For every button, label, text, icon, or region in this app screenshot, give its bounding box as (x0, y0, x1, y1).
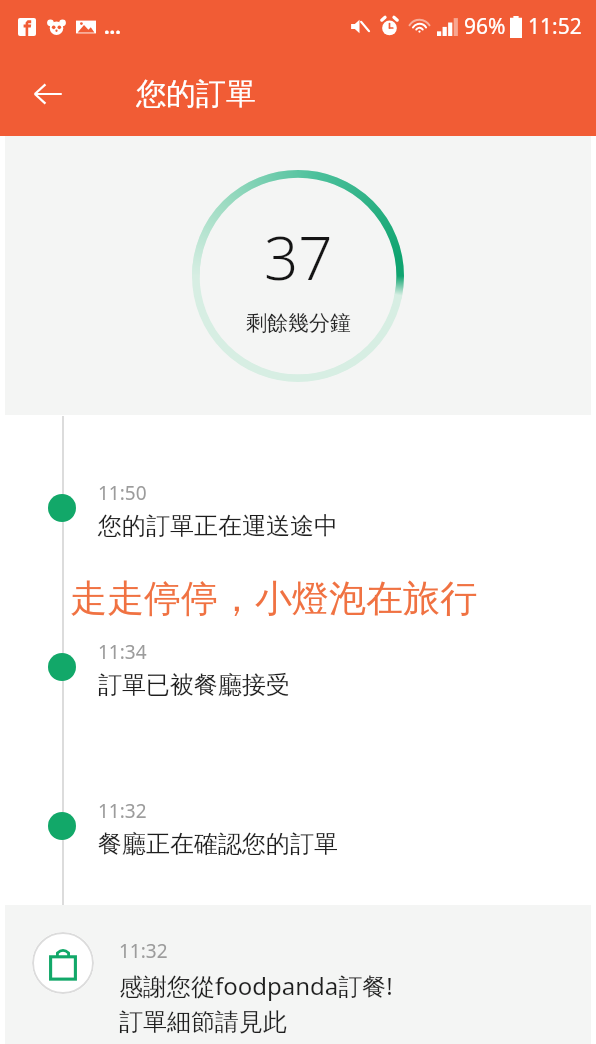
button[interactable]: 11:50 (0, 480, 596, 541)
staticText: 11:50 (98, 480, 147, 506)
button[interactable]: Back (20, 66, 76, 122)
staticText: 訂單已被餐廳接受 (98, 670, 290, 700)
staticText: 剩餘幾分鐘 (246, 310, 351, 336)
staticText: 走走停停，小燈泡在旅行 (70, 575, 477, 622)
staticText: 11:52 (528, 12, 582, 41)
staticText: 11:34 (98, 639, 147, 665)
button[interactable]: 11:34 (0, 639, 596, 700)
staticText: 您的訂單 (136, 75, 256, 113)
staticText: 您的訂單正在運送途中 (98, 511, 338, 541)
staticText: 37 (264, 216, 333, 298)
staticText: 感謝您從foodpanda訂餐! (119, 969, 393, 1002)
staticText: 11:32 (119, 938, 168, 964)
button[interactable]: 11:32 (5, 905, 591, 1044)
staticText: 11:32 (98, 798, 147, 824)
staticText: 餐廳正在確認您的訂單 (98, 829, 338, 859)
button[interactable]: 11:32 (0, 798, 596, 859)
staticText: 訂單細節請見此 (119, 1007, 287, 1037)
staticText: ... (104, 13, 121, 40)
staticText: 96% (464, 12, 506, 41)
